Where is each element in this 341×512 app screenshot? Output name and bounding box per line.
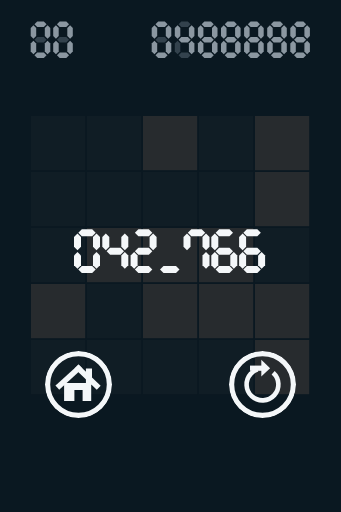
button[interactable]: Reset — [229, 351, 296, 418]
button[interactable]: Home — [45, 351, 112, 418]
